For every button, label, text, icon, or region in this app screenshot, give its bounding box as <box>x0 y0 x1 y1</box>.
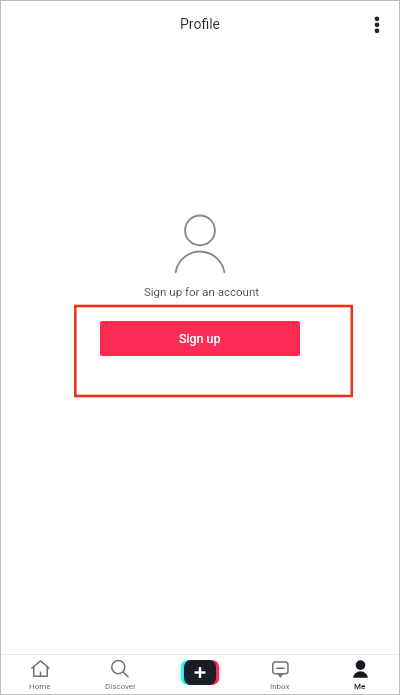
button[interactable]: Create <box>160 655 240 695</box>
staticText: Discover <box>105 682 136 691</box>
staticText: Sign up for an account <box>144 285 260 298</box>
button[interactable]: Me <box>320 655 400 695</box>
staticText: Profile <box>180 16 221 32</box>
staticText: Me <box>354 682 366 691</box>
button[interactable]: Inbox <box>240 655 320 695</box>
staticText: Inbox <box>270 682 290 691</box>
button[interactable]: More options <box>354 0 400 47</box>
button[interactable]: Discover <box>80 655 160 695</box>
button[interactable]: Sign up <box>100 321 300 356</box>
staticText: Home <box>29 682 51 691</box>
staticText: Sign up <box>179 331 221 346</box>
button[interactable]: Home <box>0 655 80 695</box>
